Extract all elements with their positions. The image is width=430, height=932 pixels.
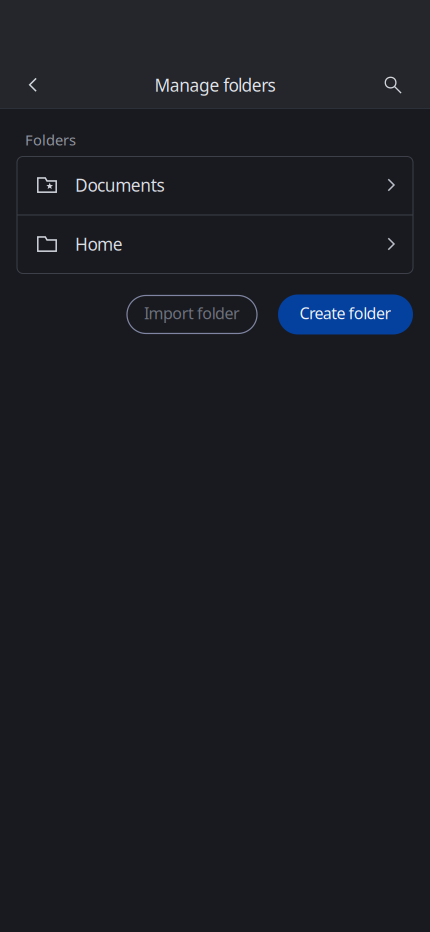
staticText: Import folder [144,302,240,324]
staticText: Documents [75,173,164,196]
button[interactable]: Home [17,215,413,273]
staticText: Home [75,232,123,255]
staticText: Manage folders [154,73,276,96]
button[interactable]: Create folder [278,294,413,334]
staticText: Folders [25,130,76,149]
button[interactable]: Documents [17,156,413,214]
button[interactable]: Back [11,63,55,107]
button[interactable]: Search [371,63,415,107]
button[interactable]: Import folder [127,294,257,334]
staticText: Create folder [300,302,391,324]
